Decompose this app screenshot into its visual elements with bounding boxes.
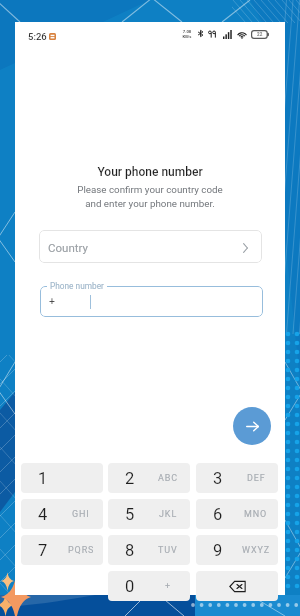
staticText: 8 xyxy=(125,541,135,560)
staticText: ABC xyxy=(158,473,179,484)
button[interactable] xyxy=(40,286,263,317)
staticText: PQRS xyxy=(68,545,95,556)
staticText: + xyxy=(49,295,55,307)
staticText: 7 xyxy=(38,541,48,560)
staticText: 1 xyxy=(38,469,48,488)
staticText: GHI xyxy=(72,509,90,520)
button[interactable]: 9 xyxy=(196,535,278,565)
staticText: 7.08 KB/s xyxy=(182,29,192,39)
staticText: 0 xyxy=(125,577,135,596)
staticText: TUV xyxy=(158,545,178,556)
staticText: 3 xyxy=(213,469,223,488)
staticText: 6 xyxy=(213,505,223,524)
staticText: 5:26 xyxy=(28,31,47,42)
staticText: 9 xyxy=(213,541,223,560)
staticText: DEF xyxy=(247,473,266,484)
staticText: 22 xyxy=(257,32,263,37)
staticText: 5 xyxy=(125,505,135,524)
staticText: 4 xyxy=(38,505,48,524)
staticText: 2 xyxy=(125,469,135,488)
button[interactable]: 6 xyxy=(196,499,278,529)
staticText: Country xyxy=(48,241,88,254)
button[interactable]: Next xyxy=(233,407,271,445)
button[interactable]: 0 xyxy=(108,571,190,601)
staticText: MNO xyxy=(244,509,268,520)
button[interactable]: 4 xyxy=(21,499,103,529)
button[interactable]: 5 xyxy=(108,499,190,529)
button[interactable]: 7 xyxy=(21,535,103,565)
button[interactable]: 1 xyxy=(21,463,103,493)
button[interactable]: 8 xyxy=(108,535,190,565)
button[interactable]: 2 xyxy=(108,463,190,493)
button[interactable]: 3 xyxy=(196,463,278,493)
staticText: + xyxy=(165,581,172,592)
staticText: Phone number xyxy=(50,281,104,291)
staticText: WXYZ xyxy=(242,545,271,556)
button[interactable]: Country xyxy=(39,230,262,263)
staticText: Your phone number xyxy=(15,165,285,179)
staticText: Please confirm your country code and ent… xyxy=(15,184,285,209)
staticText: JKL xyxy=(159,509,178,520)
button[interactable]: Backspace xyxy=(196,571,278,601)
